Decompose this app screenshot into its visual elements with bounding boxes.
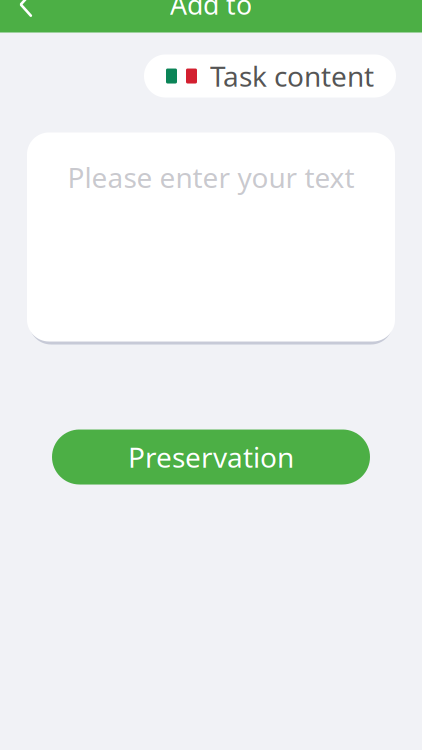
staticText: Preservation (128, 438, 294, 476)
staticText: Please enter your text (67, 158, 354, 196)
staticText: Task content (210, 57, 374, 95)
staticText: Add to (170, 0, 252, 22)
button[interactable]: Preservation (52, 429, 370, 484)
button[interactable]: Back (0, 0, 52, 30)
button[interactable]: Task content (144, 54, 396, 97)
